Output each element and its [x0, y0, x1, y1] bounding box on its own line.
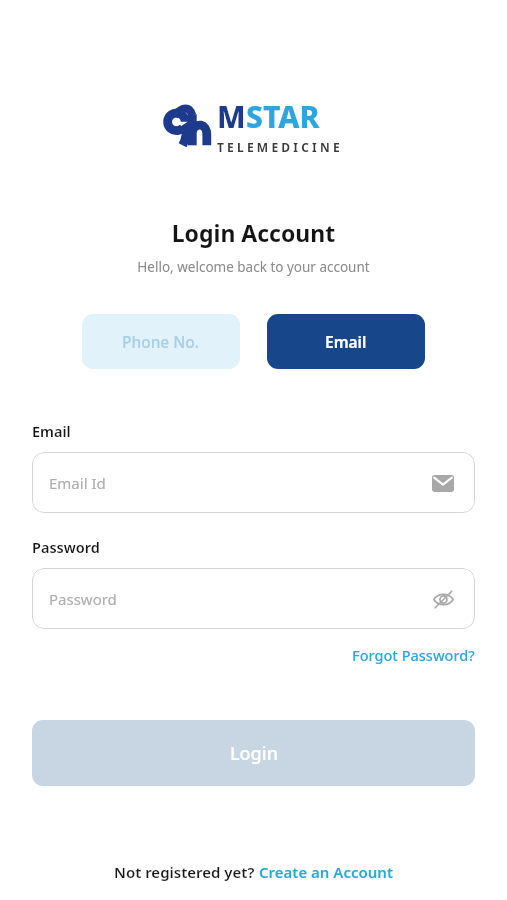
staticText: Email Id — [49, 473, 106, 493]
button[interactable]: Email — [267, 314, 425, 369]
staticText: Password — [49, 589, 117, 609]
staticText: Phone No. — [122, 331, 200, 352]
staticText: Email — [32, 421, 71, 441]
staticText: Password — [32, 537, 100, 557]
button[interactable]: Forgot Password? — [352, 643, 475, 667]
staticText: TELEMEDICINE — [217, 139, 343, 155]
button[interactable]: Email Id — [32, 452, 475, 513]
button[interactable]: Create an Account — [259, 862, 393, 882]
staticText: Hello, welcome back to your account — [0, 258, 507, 276]
other: Email — [428, 468, 458, 498]
staticText: STAR — [246, 96, 320, 137]
staticText: M — [217, 96, 246, 137]
button[interactable]: Show password — [428, 584, 458, 614]
staticText: Login — [230, 741, 278, 766]
staticText: Login Account — [0, 217, 507, 248]
staticText: Email — [325, 331, 367, 352]
button[interactable]: Login — [32, 720, 475, 786]
staticText: Not registered yet? — [114, 862, 259, 882]
button[interactable]: Password — [32, 568, 475, 629]
button[interactable]: Phone No. — [82, 314, 240, 369]
